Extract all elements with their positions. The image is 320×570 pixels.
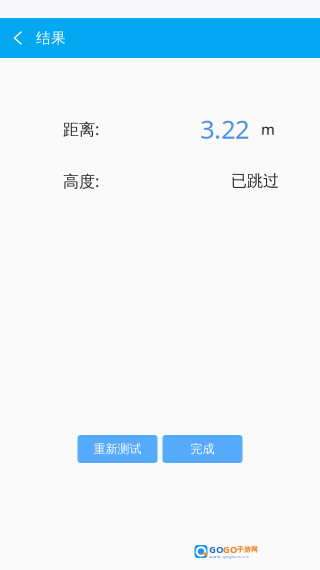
staticText: 高度: <box>63 170 99 192</box>
staticText: GO <box>209 543 223 556</box>
button[interactable]: 完成 <box>162 435 242 463</box>
staticText: 重新测试 <box>93 442 141 456</box>
staticText: 手游网 <box>237 545 258 554</box>
staticText: 距离: <box>63 118 99 140</box>
staticText: 3.22 <box>200 112 249 146</box>
staticText: GO <box>223 543 237 556</box>
staticText: 结果 <box>36 29 66 47</box>
button[interactable]: 重新测试 <box>77 435 157 463</box>
staticText: 完成 <box>190 442 214 456</box>
staticText: m <box>261 119 275 139</box>
staticText: w w w . g o g o c n . c n <box>209 554 248 559</box>
button[interactable]: Back <box>0 18 36 58</box>
staticText: 已跳过 <box>231 171 279 191</box>
